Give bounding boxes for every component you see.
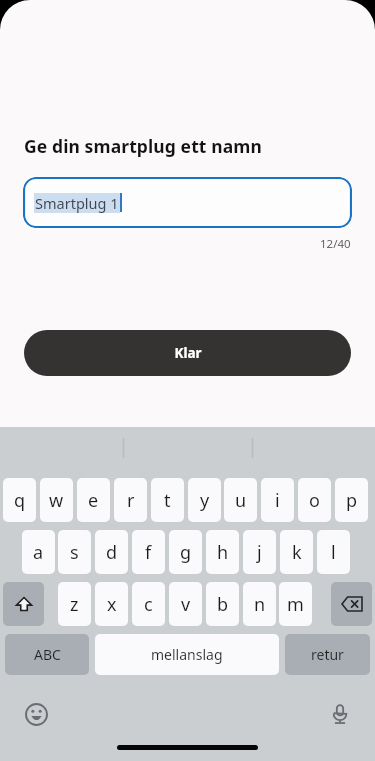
- button[interactable]: l: [317, 530, 350, 574]
- button[interactable]: Emoji: [19, 697, 53, 731]
- button[interactable]: v: [169, 582, 202, 626]
- button[interactable]: g: [169, 530, 202, 574]
- staticText: o: [309, 488, 320, 513]
- staticText: g: [180, 540, 192, 565]
- button[interactable]: p: [335, 478, 368, 522]
- staticText: j: [257, 540, 262, 565]
- button[interactable]: n: [243, 582, 276, 626]
- button[interactable]: Shift: [3, 582, 44, 626]
- staticText: c: [144, 592, 153, 617]
- staticText: f: [145, 540, 152, 565]
- staticText: l: [331, 540, 336, 565]
- staticText: e: [88, 488, 99, 513]
- staticText: m: [287, 592, 304, 617]
- staticText: p: [346, 488, 358, 513]
- staticText: u: [235, 488, 247, 513]
- staticText: mellanslag: [151, 645, 223, 664]
- button[interactable]: retur: [285, 634, 370, 675]
- staticText: 12/40: [320, 236, 351, 252]
- staticText: s: [70, 540, 79, 565]
- staticText: Ge din smartplug ett namn: [24, 134, 262, 158]
- staticText: q: [14, 488, 26, 513]
- staticText: n: [254, 592, 266, 617]
- button[interactable]: Klar: [24, 330, 351, 376]
- button[interactable]: Backspace: [331, 582, 372, 626]
- button[interactable]: h: [206, 530, 239, 574]
- staticText: t: [164, 488, 171, 513]
- button[interactable]: r: [114, 478, 147, 522]
- staticText: y: [200, 488, 210, 513]
- staticText: ABC: [34, 645, 61, 664]
- staticText: b: [217, 592, 229, 617]
- button[interactable]: t: [151, 478, 184, 522]
- button[interactable]: e: [77, 478, 110, 522]
- staticText: retur: [311, 645, 344, 664]
- button[interactable]: x: [95, 582, 128, 626]
- staticText: v: [181, 592, 191, 617]
- button[interactable]: b: [206, 582, 239, 626]
- button[interactable]: m: [279, 582, 312, 626]
- button[interactable]: Voice input: [323, 697, 357, 731]
- staticText: w: [49, 488, 64, 513]
- staticText: i: [275, 488, 280, 513]
- button[interactable]: q: [3, 478, 36, 522]
- staticText: d: [106, 540, 118, 565]
- button[interactable]: mellanslag: [95, 634, 279, 675]
- button[interactable]: ABC: [5, 634, 89, 675]
- button[interactable]: z: [58, 582, 91, 626]
- button[interactable]: a: [22, 530, 55, 574]
- button[interactable]: d: [95, 530, 128, 574]
- button[interactable]: c: [132, 582, 165, 626]
- button[interactable]: u: [224, 478, 257, 522]
- button[interactable]: y: [188, 478, 221, 522]
- button[interactable]: o: [298, 478, 331, 522]
- button[interactable]: f: [132, 530, 165, 574]
- staticText: h: [217, 540, 229, 565]
- button[interactable]: k: [280, 530, 313, 574]
- staticText: k: [292, 540, 302, 565]
- button[interactable]: Smartplug 1: [23, 177, 352, 228]
- staticText: x: [107, 592, 117, 617]
- staticText: Smartplug 1: [35, 193, 119, 213]
- staticText: a: [33, 540, 44, 565]
- button[interactable]: i: [261, 478, 294, 522]
- staticText: z: [70, 592, 79, 617]
- button[interactable]: w: [40, 478, 73, 522]
- button[interactable]: s: [58, 530, 91, 574]
- staticText: Klar: [174, 344, 202, 362]
- button[interactable]: j: [243, 530, 276, 574]
- staticText: r: [127, 488, 135, 513]
